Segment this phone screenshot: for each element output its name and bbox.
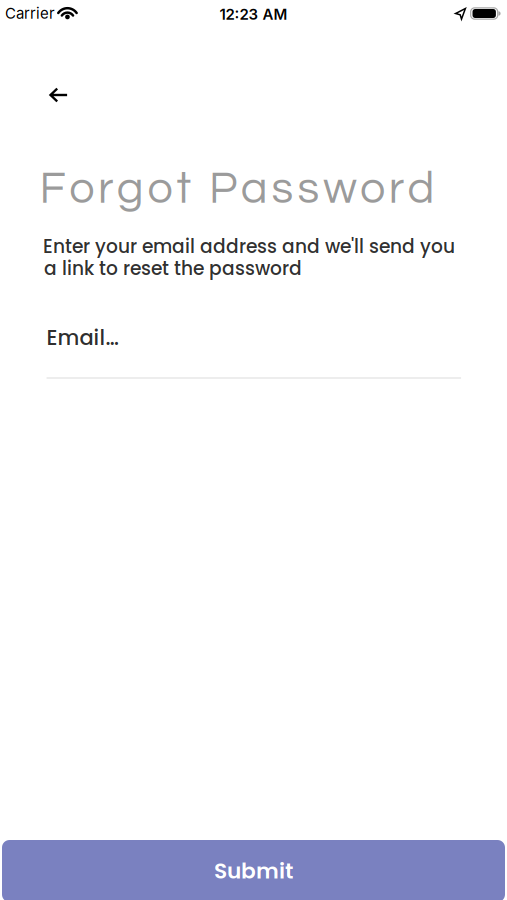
staticText: Submit xyxy=(214,856,293,886)
staticText: a link to reset the password xyxy=(44,255,302,281)
button[interactable]: Submit xyxy=(2,840,505,900)
staticText: 12:23 AM xyxy=(219,5,287,23)
staticText: Carrier xyxy=(5,4,55,22)
button[interactable]: Email xyxy=(47,323,461,379)
button[interactable]: Back xyxy=(41,82,75,108)
staticText: Forgot Password xyxy=(39,166,435,212)
staticText: Email… xyxy=(47,323,119,352)
staticText: Enter your email address and we'll send … xyxy=(43,233,455,259)
